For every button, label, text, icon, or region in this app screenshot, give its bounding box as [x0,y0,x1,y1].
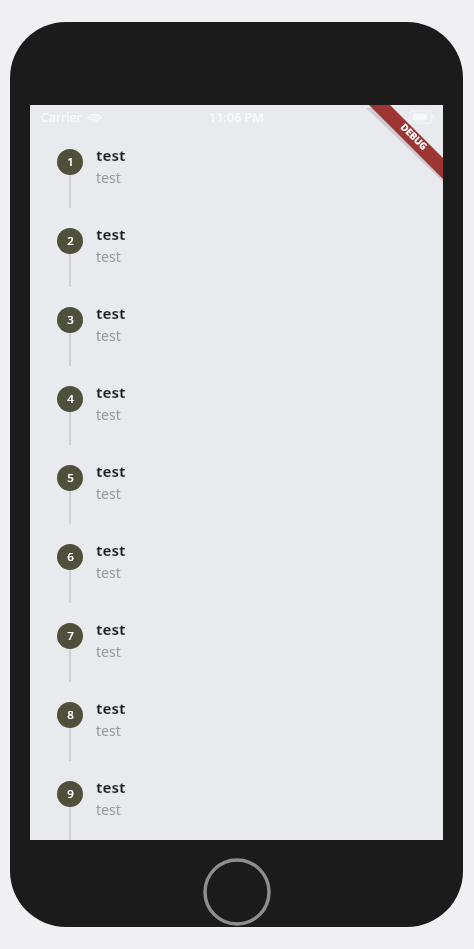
staticText: 7 [67,628,74,644]
staticText: Carrier [41,109,82,126]
staticText: test [96,224,126,244]
staticText: 2 [67,233,74,249]
button[interactable]: 5 [30,445,443,524]
staticText: test [96,168,121,187]
staticText: 3 [67,312,74,328]
staticText: test [96,382,126,402]
staticText: 11:06 PM [209,109,264,126]
button[interactable]: 7 [30,603,443,682]
staticText: test [96,777,126,797]
staticText: 8 [67,707,74,723]
staticText: test [96,247,121,266]
button[interactable]: 1 [30,129,443,208]
staticText: test [96,303,126,323]
staticText: test [96,698,126,718]
staticText: 5 [67,470,74,486]
staticText: test [96,326,121,345]
staticText: DEBUG [398,120,430,153]
staticText: test [96,484,121,503]
staticText: test [96,405,121,424]
button[interactable]: 4 [30,366,443,445]
staticText: test [96,540,126,560]
button[interactable]: 2 [30,208,443,287]
staticText: 4 [67,391,74,407]
staticText: test [96,642,121,661]
staticText: 6 [67,549,74,565]
staticText: test [96,619,126,639]
button[interactable]: 9 [30,761,443,840]
button[interactable]: 3 [30,287,443,366]
button[interactable]: 8 [30,682,443,761]
staticText: test [96,461,126,481]
button[interactable]: 6 [30,524,443,603]
staticText: test [96,800,121,819]
staticText: test [96,145,126,165]
staticText: test [96,563,121,582]
staticText: 9 [67,786,74,802]
staticText: test [96,721,121,740]
staticText: 1 [67,154,74,170]
button[interactable]: Home [203,858,271,926]
